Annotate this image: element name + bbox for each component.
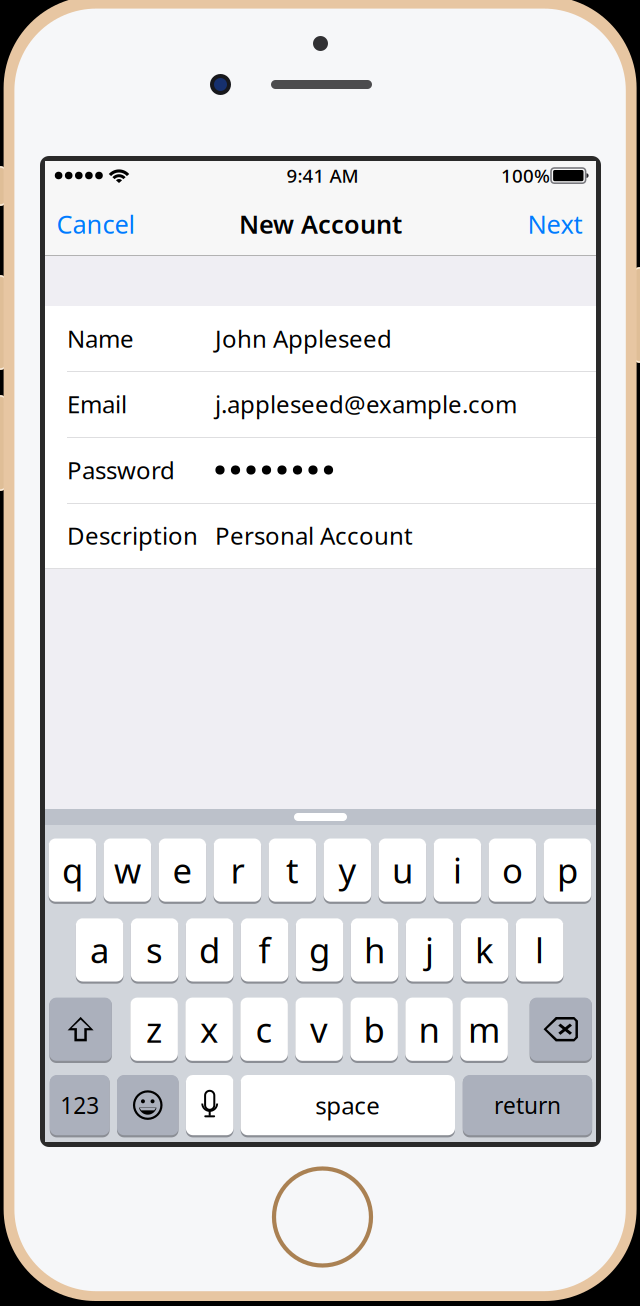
staticText: John Appleseed — [215, 323, 392, 354]
button[interactable]: r — [214, 838, 261, 904]
staticText: a — [90, 927, 109, 973]
staticText: y — [338, 847, 356, 893]
button[interactable]: f — [241, 917, 288, 984]
button[interactable]: p — [544, 838, 591, 904]
button[interactable]: j — [406, 917, 453, 984]
button[interactable] — [186, 1074, 233, 1137]
staticText: c — [256, 1006, 273, 1052]
staticText: b — [364, 1006, 385, 1052]
staticText: return — [494, 1090, 561, 1120]
staticText: Description — [67, 520, 198, 551]
staticText: k — [475, 927, 494, 973]
button[interactable]: z — [130, 997, 178, 1063]
button[interactable] — [49, 997, 112, 1063]
button[interactable]: space — [241, 1074, 455, 1137]
button[interactable]: u — [379, 838, 426, 904]
staticText: z — [146, 1006, 162, 1052]
staticText: 100% — [501, 163, 550, 188]
staticText: t — [286, 847, 299, 893]
button[interactable]: a — [76, 917, 123, 984]
button[interactable]: v — [295, 997, 343, 1063]
staticText: x — [200, 1006, 218, 1052]
button[interactable]: Name — [45, 306, 596, 371]
button[interactable]: Password — [45, 437, 596, 503]
button[interactable]: 123 — [50, 1074, 110, 1137]
button[interactable]: h — [351, 917, 398, 984]
staticText: space — [315, 1089, 380, 1121]
button[interactable]: g — [296, 917, 343, 984]
staticText: Cancel — [56, 207, 135, 241]
button[interactable]: o — [489, 838, 536, 904]
staticText: v — [310, 1006, 328, 1052]
staticText: i — [453, 847, 462, 893]
staticText: u — [392, 847, 413, 893]
button[interactable]: e — [159, 838, 206, 904]
button[interactable]: s — [131, 917, 178, 984]
button[interactable]: t — [269, 838, 316, 904]
button[interactable] — [530, 997, 592, 1063]
staticText: Email — [67, 388, 127, 420]
button[interactable]: Next — [514, 193, 596, 255]
staticText: d — [199, 927, 220, 973]
staticText: Next — [527, 207, 582, 241]
button[interactable]: i — [434, 838, 481, 904]
staticText: e — [172, 847, 192, 893]
staticText: o — [502, 847, 523, 893]
staticText: s — [146, 927, 163, 973]
staticText: r — [230, 847, 244, 893]
staticText: l — [535, 927, 544, 973]
button[interactable]: m — [460, 997, 508, 1063]
staticText: g — [309, 927, 330, 973]
staticText: New Account — [239, 207, 402, 241]
staticText: Personal Account — [215, 520, 413, 551]
button[interactable]: n — [405, 997, 453, 1063]
button[interactable]: d — [186, 917, 233, 984]
button[interactable]: l — [516, 917, 563, 984]
staticText: Name — [67, 323, 134, 354]
staticText: j.appleseed@example.com — [215, 388, 517, 420]
staticText: h — [364, 927, 385, 973]
button[interactable]: Email — [45, 371, 596, 437]
staticText: 9:41 AM — [286, 163, 358, 188]
button[interactable]: w — [104, 838, 151, 904]
button[interactable]: return — [463, 1074, 592, 1137]
staticText: Password — [67, 454, 175, 486]
button[interactable]: Cancel — [45, 193, 147, 255]
staticText: w — [114, 847, 141, 893]
staticText: p — [557, 847, 578, 893]
staticText: j — [425, 927, 434, 973]
button[interactable]: q — [49, 838, 96, 904]
button[interactable]: Description — [45, 503, 596, 568]
button[interactable]: x — [185, 997, 233, 1063]
button[interactable]: k — [461, 917, 508, 984]
staticText: f — [259, 927, 271, 973]
button[interactable]: b — [350, 997, 398, 1063]
staticText: m — [468, 1006, 500, 1052]
button[interactable]: y — [324, 838, 371, 904]
staticText: n — [419, 1006, 440, 1052]
staticText: 123 — [60, 1090, 99, 1120]
button[interactable]: c — [240, 997, 288, 1063]
button[interactable] — [117, 1074, 178, 1137]
staticText: q — [62, 847, 83, 893]
